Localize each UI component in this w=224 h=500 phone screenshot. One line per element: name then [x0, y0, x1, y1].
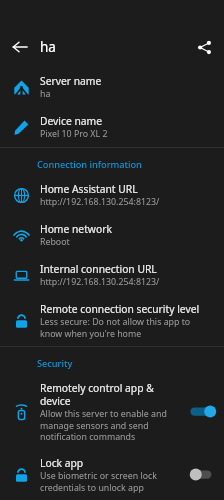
- button[interactable]: Home network: [0, 215, 224, 255]
- staticText: Connection information: [37, 158, 142, 171]
- staticText: Device name: [40, 114, 103, 128]
- staticText: ha: [40, 38, 184, 56]
- staticText: Allow this server to enable and manage s…: [40, 408, 185, 442]
- button[interactable]: Lock app: [0, 449, 224, 500]
- button[interactable]: Internal connection URL: [0, 255, 224, 295]
- button[interactable]: Disabled: [189, 467, 216, 482]
- button[interactable]: Device name: [0, 107, 224, 147]
- staticText: Home Assistant URL: [40, 182, 138, 196]
- staticText: Lock app: [40, 456, 84, 470]
- staticText: http://192.168.130.254:8123/: [40, 196, 160, 208]
- staticText: Less secure: Do not allow this app to kn…: [40, 316, 212, 339]
- staticText: Reboot: [40, 236, 70, 248]
- button[interactable]: Server name: [0, 67, 224, 107]
- staticText: Remotely control app & device: [40, 381, 185, 408]
- staticText: Security: [37, 357, 73, 370]
- button[interactable]: Enabled: [189, 404, 216, 419]
- staticText: Remote connection security level: [40, 302, 200, 316]
- staticText: Use biometric or screen lock credentials…: [40, 470, 185, 493]
- button[interactable]: Back: [0, 27, 40, 67]
- staticText: Server name: [40, 74, 102, 88]
- button[interactable]: Remote connection security level: [0, 295, 224, 346]
- staticText: Pixel 10 Pro XL 2: [40, 128, 108, 140]
- staticText: Home network: [40, 222, 112, 236]
- button[interactable]: Home Assistant URL: [0, 175, 224, 215]
- staticText: ha: [40, 88, 51, 100]
- staticText: http://192.168.130.254:8123/: [40, 276, 160, 288]
- button[interactable]: Share: [184, 27, 224, 67]
- button[interactable]: Remotely control app & device: [0, 374, 224, 449]
- staticText: Internal connection URL: [40, 262, 157, 276]
